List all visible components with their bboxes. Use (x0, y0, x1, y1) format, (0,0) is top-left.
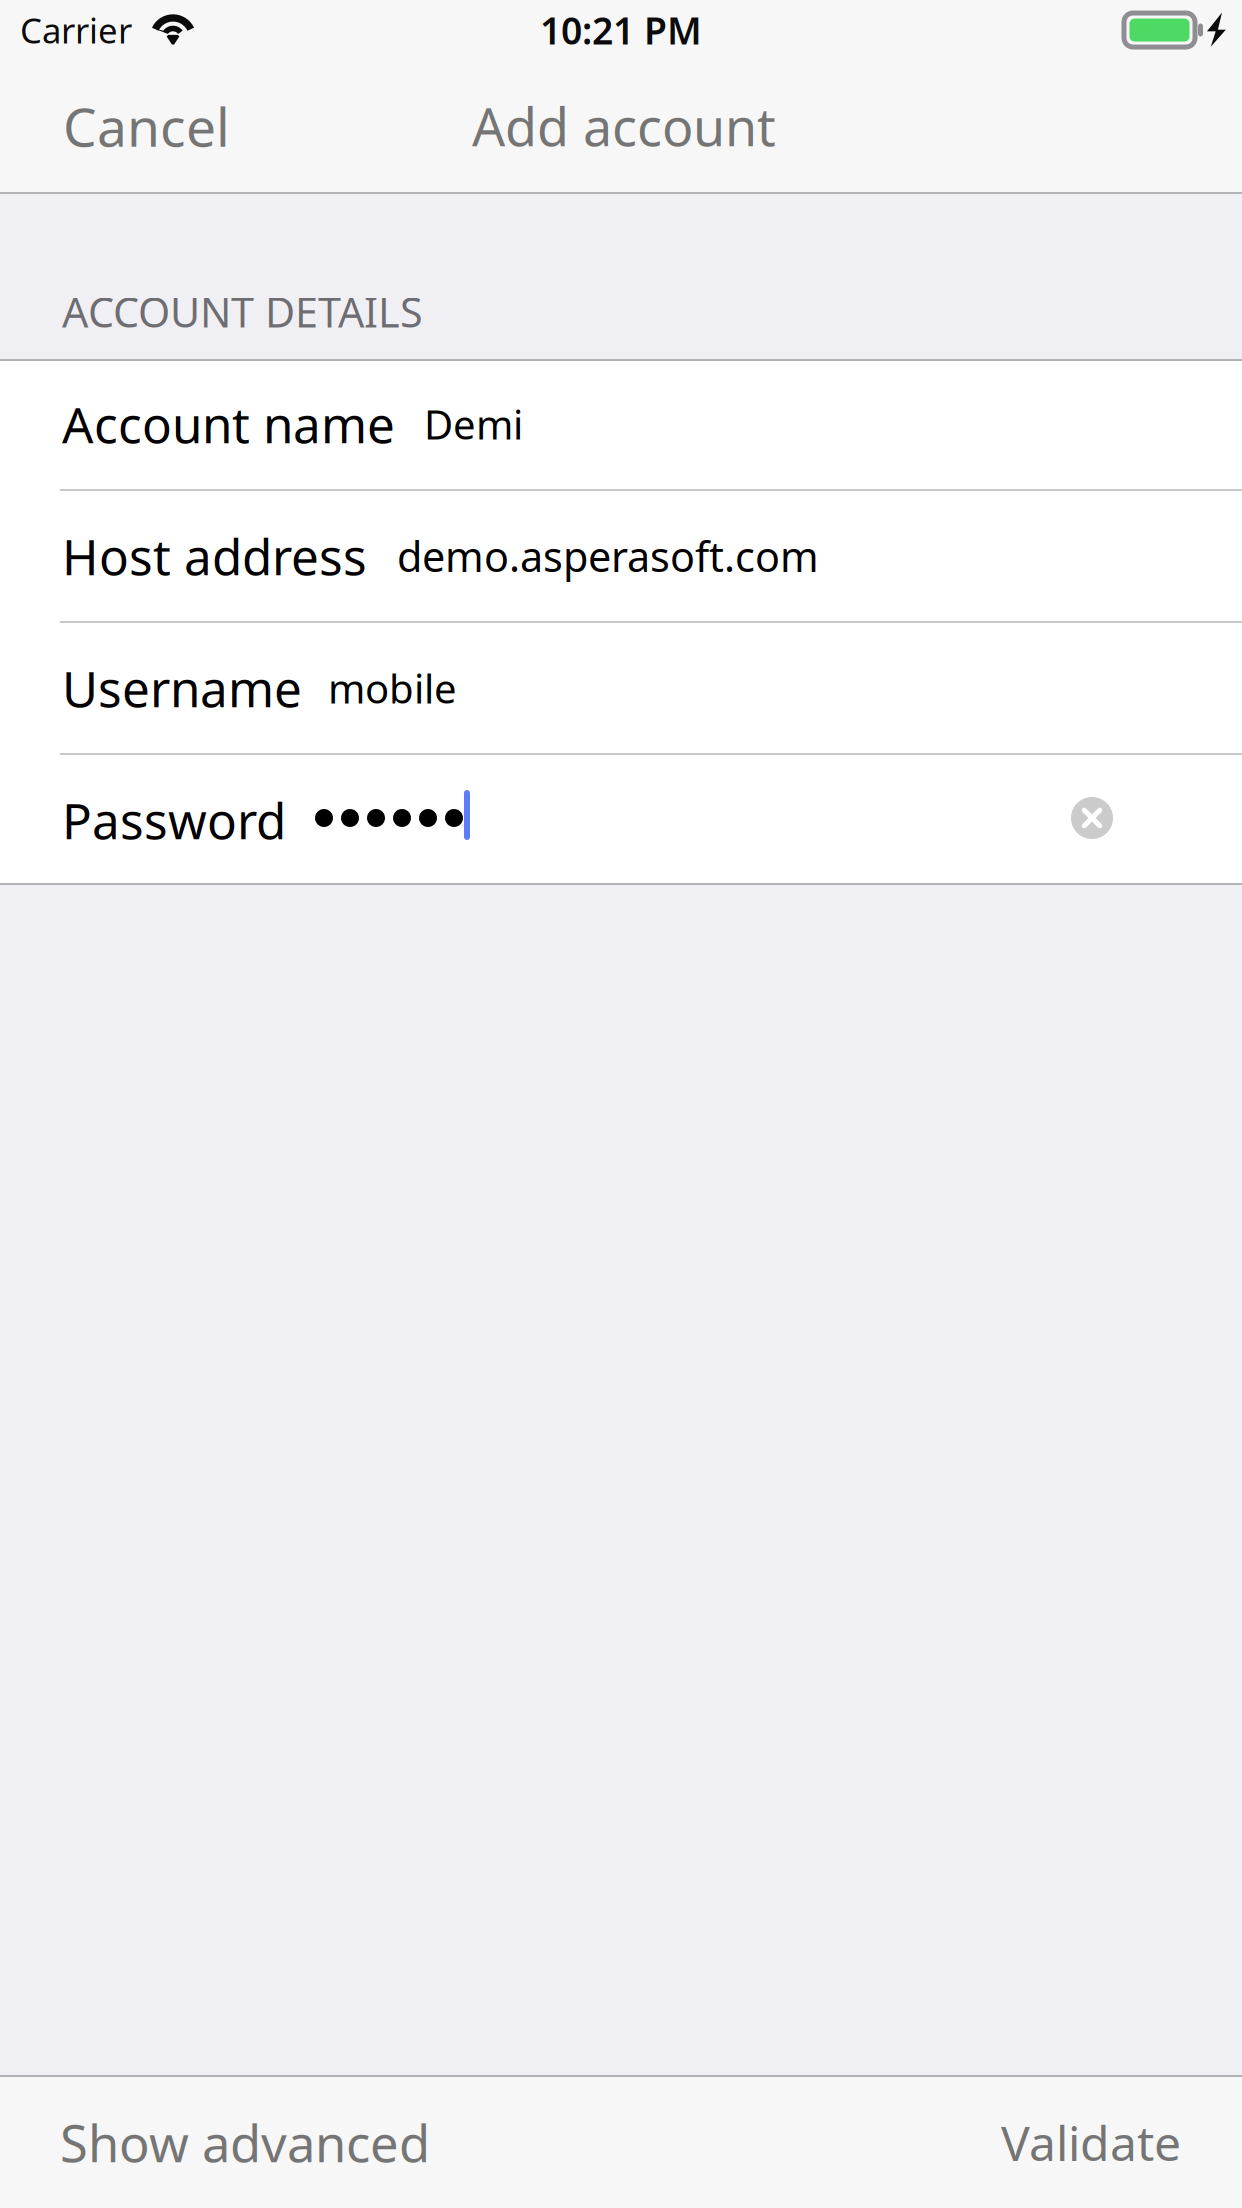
staticText: Validate (1001, 2111, 1181, 2174)
staticText: Account name (62, 391, 395, 457)
button[interactable]: Validate (971, 2077, 1242, 2208)
staticText: Cancel (63, 91, 230, 161)
staticText: Add account (472, 91, 776, 161)
staticText: Username (62, 655, 302, 721)
staticText: Host address (62, 523, 367, 589)
staticText: ACCOUNT DETAILS (62, 284, 423, 339)
staticText: Carrier (20, 7, 132, 53)
button[interactable]: Username (0, 623, 1242, 753)
button[interactable]: Clear password (1046, 772, 1138, 864)
button[interactable]: Cancel (0, 60, 258, 192)
staticText: 10:21 PM (540, 5, 702, 55)
staticText: Password (62, 787, 286, 853)
button[interactable]: Password (0, 755, 1242, 885)
staticText: mobile (328, 661, 457, 714)
button[interactable]: Account name (0, 359, 1242, 489)
button[interactable]: Host address (0, 491, 1242, 621)
button[interactable]: Show advanced (0, 2077, 460, 2208)
staticText: Demi (424, 397, 523, 450)
staticText: Show advanced (60, 2109, 430, 2176)
staticText: demo.asperasoft.com (397, 529, 819, 583)
